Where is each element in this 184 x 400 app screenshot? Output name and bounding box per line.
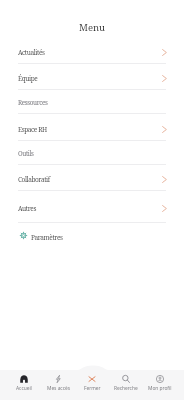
- staticText: Mon profil: [148, 385, 172, 392]
- staticText: Ressources: [18, 98, 48, 107]
- staticText: Mes accès: [47, 385, 70, 392]
- staticText: Autres: [18, 204, 36, 213]
- button[interactable]: Actualités: [0, 38, 184, 63]
- staticText: Fermer: [84, 385, 101, 392]
- button[interactable]: Accueil: [7, 370, 41, 400]
- button[interactable]: Paramètres: [0, 223, 184, 248]
- staticText: Actualités: [18, 48, 45, 57]
- staticText: Menu: [79, 21, 106, 34]
- staticText: Espace RH: [18, 125, 47, 134]
- button[interactable]: Équipe: [0, 64, 184, 89]
- button[interactable]: Recherche: [109, 370, 143, 400]
- staticText: Collaboratif: [18, 175, 50, 184]
- staticText: Recherche: [114, 385, 138, 392]
- staticText: Outils: [18, 149, 34, 158]
- button[interactable]: Mon profil: [143, 370, 177, 400]
- staticText: Accueil: [16, 385, 32, 392]
- button[interactable]: Mes accès: [41, 370, 75, 400]
- staticText: Paramètres: [31, 233, 63, 242]
- button[interactable]: Espace RH: [0, 114, 184, 140]
- button[interactable]: Collaboratif: [0, 165, 184, 190]
- button[interactable]: Fermer: [75, 370, 109, 400]
- staticText: Équipe: [18, 74, 38, 83]
- button[interactable]: Autres: [0, 191, 184, 222]
